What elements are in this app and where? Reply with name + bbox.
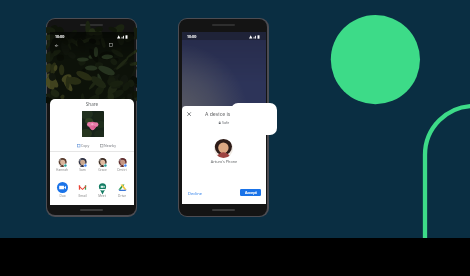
staticText: Arturo's Phone <box>182 159 266 164</box>
staticText: Hannah <box>56 168 68 172</box>
staticText: Accept <box>245 190 257 195</box>
button[interactable]: Hannah <box>55 158 69 172</box>
button[interactable]: Back <box>53 42 60 49</box>
button[interactable]: Duo <box>55 182 69 198</box>
staticText: Nearby <box>104 143 116 148</box>
button[interactable]: Meet <box>95 182 109 198</box>
staticText: Drive <box>118 194 126 198</box>
button[interactable]: Nearby <box>100 143 116 148</box>
button[interactable]: Drive <box>115 182 129 198</box>
staticText: A device is nearby <box>205 110 249 117</box>
button[interactable]: Crop <box>107 41 114 48</box>
button[interactable]: Close <box>185 110 193 118</box>
button[interactable]: Accept <box>240 189 261 196</box>
staticText: Copy <box>81 143 90 148</box>
button[interactable]: Sam <box>75 158 89 172</box>
staticText: Sam <box>79 168 86 172</box>
button[interactable]: Decline <box>186 189 204 198</box>
button[interactable]: Dmitri <box>115 158 129 172</box>
staticText: 10:00 <box>187 34 197 39</box>
staticText: Share <box>50 101 134 107</box>
staticText: Safe <box>222 120 230 125</box>
staticText: Decline <box>188 191 202 196</box>
button[interactable]: Copy <box>77 143 90 148</box>
staticText: Grace <box>98 168 107 172</box>
staticText: 10:00 <box>55 34 65 39</box>
button[interactable]: Email <box>75 182 89 198</box>
staticText: Dmitri <box>117 168 127 172</box>
button[interactable]: Grace <box>95 158 109 172</box>
staticText: Duo <box>59 194 66 198</box>
staticText: Meet <box>98 194 106 198</box>
staticText: Email <box>78 194 87 198</box>
